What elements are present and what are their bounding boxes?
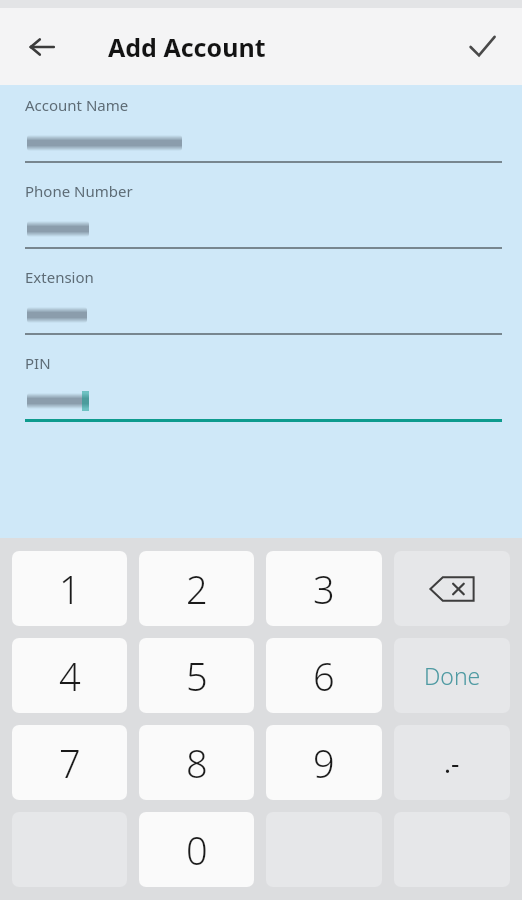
staticText: 0 [186, 824, 208, 876]
button[interactable]: 1 [12, 551, 127, 626]
button[interactable]: 2 [139, 551, 254, 626]
button[interactable]: Save [454, 19, 510, 75]
button[interactable]: 8 [139, 725, 254, 800]
staticText: 1 [59, 563, 81, 615]
staticText: 7 [59, 737, 81, 789]
button[interactable]: Extension [0, 249, 522, 335]
button[interactable]: Back [14, 19, 70, 75]
staticText: Add Account [108, 30, 266, 64]
button[interactable]: Account Name [0, 85, 522, 163]
staticText: 9 [313, 737, 335, 789]
button[interactable]: 4 [12, 638, 127, 713]
staticText: Extension [25, 267, 94, 287]
staticText: Done [424, 660, 481, 691]
button[interactable]: Done [394, 638, 510, 713]
button[interactable]: 6 [266, 638, 382, 713]
staticText: 8 [186, 737, 208, 789]
staticText: Account Name [25, 95, 129, 115]
staticText: .- [444, 745, 460, 780]
staticText: 5 [186, 650, 208, 702]
button[interactable]: 7 [12, 725, 127, 800]
staticText: Phone Number [25, 181, 133, 201]
button[interactable]: Backspace [394, 551, 510, 626]
staticText: 2 [186, 563, 208, 615]
button[interactable]: 9 [266, 725, 382, 800]
button[interactable]: 5 [139, 638, 254, 713]
staticText: 6 [313, 650, 335, 702]
staticText: 3 [313, 563, 335, 615]
button[interactable]: .- [394, 725, 510, 800]
button[interactable]: 0 [139, 812, 254, 887]
button[interactable]: PIN [0, 335, 522, 422]
button[interactable]: Phone Number [0, 163, 522, 249]
staticText: 4 [59, 650, 81, 702]
staticText: PIN [25, 353, 51, 373]
button[interactable]: 3 [266, 551, 382, 626]
